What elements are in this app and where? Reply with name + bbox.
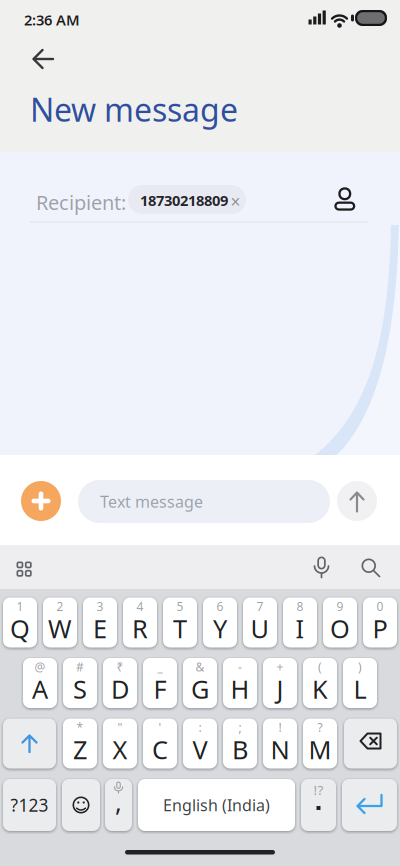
staticText: Z — [73, 733, 87, 766]
staticText: Q — [10, 612, 30, 645]
staticText: K — [312, 672, 328, 706]
staticText: L — [353, 672, 366, 706]
staticText: Recipient: — [36, 189, 126, 216]
staticText: 8 — [296, 598, 303, 614]
staticText: Text message — [100, 491, 203, 512]
staticText: ? — [317, 719, 322, 735]
staticText: G — [191, 672, 209, 706]
staticText: - — [238, 659, 242, 675]
staticText: _ — [157, 659, 162, 675]
staticText: ' — [158, 719, 161, 735]
staticText: I — [295, 612, 304, 645]
staticText: ; — [238, 719, 241, 735]
staticText: T — [173, 612, 187, 645]
staticText: D — [111, 672, 129, 706]
staticText: R — [132, 612, 148, 645]
staticText: 5 — [176, 598, 183, 614]
staticText: * — [76, 719, 83, 735]
staticText: W — [48, 612, 72, 645]
staticText: Y — [213, 612, 227, 645]
staticText: A — [32, 672, 48, 706]
staticText: S — [73, 672, 87, 706]
staticText: ₹ — [116, 659, 123, 675]
staticText: ) — [358, 659, 362, 675]
staticText: V — [192, 733, 207, 766]
staticText: J — [276, 672, 283, 706]
staticText: # — [76, 659, 84, 675]
staticText: X — [112, 733, 127, 766]
staticText: 9 — [336, 598, 343, 614]
staticText: 3 — [96, 598, 103, 614]
staticText: E — [93, 612, 107, 645]
staticText: 2 — [56, 598, 63, 614]
staticText: F — [153, 672, 166, 706]
staticText: × — [230, 190, 240, 213]
staticText: 2:36 AM — [24, 10, 80, 29]
staticText: " — [117, 719, 122, 735]
staticText: H — [230, 672, 249, 706]
staticText: , — [115, 785, 122, 819]
staticText: English (India) — [163, 794, 270, 816]
staticText: P — [372, 612, 387, 645]
staticText: + — [276, 659, 283, 675]
staticText: 4 — [136, 598, 143, 614]
staticText: ?123 — [10, 793, 48, 816]
staticText: U — [250, 612, 269, 645]
staticText: B — [232, 733, 248, 766]
staticText: ! — [278, 719, 281, 735]
staticText: @ — [34, 659, 45, 675]
staticText: C — [152, 733, 168, 766]
staticText: 7 — [256, 598, 263, 614]
staticText: New message — [30, 88, 238, 130]
staticText: !? — [313, 781, 323, 799]
staticText: 1 — [16, 598, 23, 614]
staticText: : — [198, 719, 201, 735]
staticText: 18730218809 — [140, 190, 228, 210]
staticText: 6 — [216, 598, 223, 614]
staticText: M — [308, 733, 331, 766]
staticText: 0 — [376, 598, 383, 614]
staticText: ( — [318, 659, 322, 675]
staticText: N — [270, 733, 289, 766]
staticText: O — [330, 612, 350, 645]
staticText: & — [195, 659, 204, 675]
